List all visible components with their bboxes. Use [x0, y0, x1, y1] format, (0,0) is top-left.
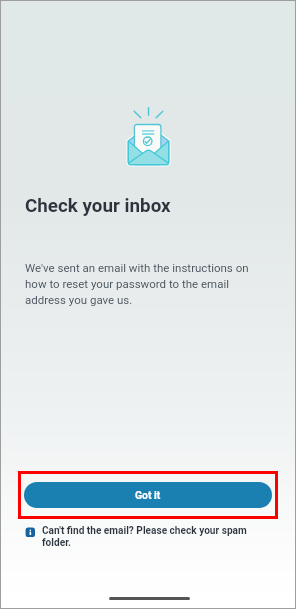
staticText: We've sent an email with the instruction… [25, 261, 263, 306]
staticText: Check your inbox [25, 195, 171, 217]
staticText: Got it [135, 489, 161, 501]
staticText: Can't find the email? Please check your … [42, 525, 271, 548]
button[interactable]: Got it [24, 482, 272, 508]
other: Information [25, 527, 36, 538]
